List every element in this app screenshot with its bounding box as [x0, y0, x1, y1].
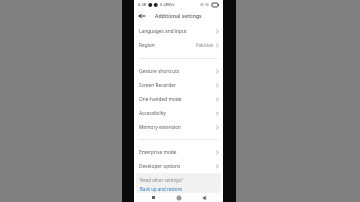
- staticText: Pakistan: [196, 42, 214, 48]
- button[interactable]: Accessibility: [134, 106, 223, 120]
- staticText: 6:28 ⬤ ⬤ 0.2KB/s: [138, 2, 175, 7]
- staticText: ⦿ ⦿: [200, 2, 210, 7]
- staticText: Additional settings: [155, 12, 202, 19]
- staticText: One-handed mode: [139, 96, 216, 103]
- staticText: Screen Recorder: [139, 82, 216, 89]
- staticText: Back up and restore: [140, 186, 182, 192]
- button[interactable]: Back: [198, 193, 209, 202]
- button[interactable]: Developer options: [134, 159, 223, 173]
- button[interactable]: One-handed mode: [134, 92, 223, 106]
- button[interactable]: Back: [136, 10, 147, 21]
- button[interactable]: Region: [134, 38, 223, 52]
- staticText: Enterprise mode: [139, 149, 216, 156]
- button[interactable]: Screen Recorder: [134, 78, 223, 92]
- staticText: Accessibility: [139, 110, 216, 117]
- staticText: Region: [139, 42, 196, 49]
- staticText: Developer options: [139, 163, 216, 170]
- staticText: Languages and input: [139, 28, 216, 35]
- staticText: Need other settings?: [140, 177, 183, 183]
- button[interactable]: Languages and input: [134, 24, 223, 38]
- button[interactable]: Memory extension: [134, 120, 223, 134]
- staticText: Gesture shortcuts: [139, 68, 216, 75]
- button[interactable]: Recents: [148, 193, 159, 202]
- staticText: Memory extension: [139, 124, 216, 131]
- button[interactable]: Home: [173, 193, 184, 202]
- button[interactable]: Gesture shortcuts: [134, 64, 223, 78]
- button[interactable]: Enterprise mode: [134, 145, 223, 159]
- button[interactable]: Back up and restore: [140, 186, 182, 192]
